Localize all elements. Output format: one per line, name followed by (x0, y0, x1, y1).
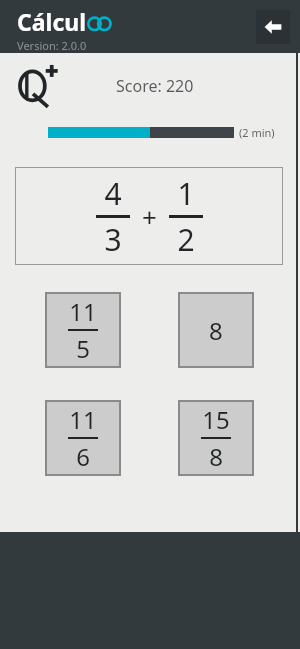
button[interactable]: 11 (47, 294, 119, 366)
button[interactable]: 8 (180, 294, 252, 366)
staticText: Cálcul (17, 6, 87, 37)
staticText: 6 (76, 440, 90, 473)
staticText: 11 (69, 403, 97, 436)
staticText: 11 (69, 295, 97, 328)
staticText: 3 (104, 219, 122, 260)
staticText: (2 min) (239, 125, 275, 140)
staticText: 2 (177, 219, 195, 260)
button[interactable]: Back (256, 10, 290, 44)
staticText: 5 (76, 332, 90, 365)
staticText: + (142, 199, 157, 234)
button[interactable]: 11 (47, 402, 119, 474)
staticText: Score: 220 (116, 75, 194, 97)
staticText: 15 (202, 403, 230, 436)
button[interactable]: 15 (180, 402, 252, 474)
staticText: 8 (209, 440, 223, 473)
staticText: 1 (177, 173, 195, 214)
staticText: 4 (104, 173, 122, 214)
staticText: Version: 2.0.0 (17, 38, 87, 53)
staticText: 8 (209, 314, 223, 347)
